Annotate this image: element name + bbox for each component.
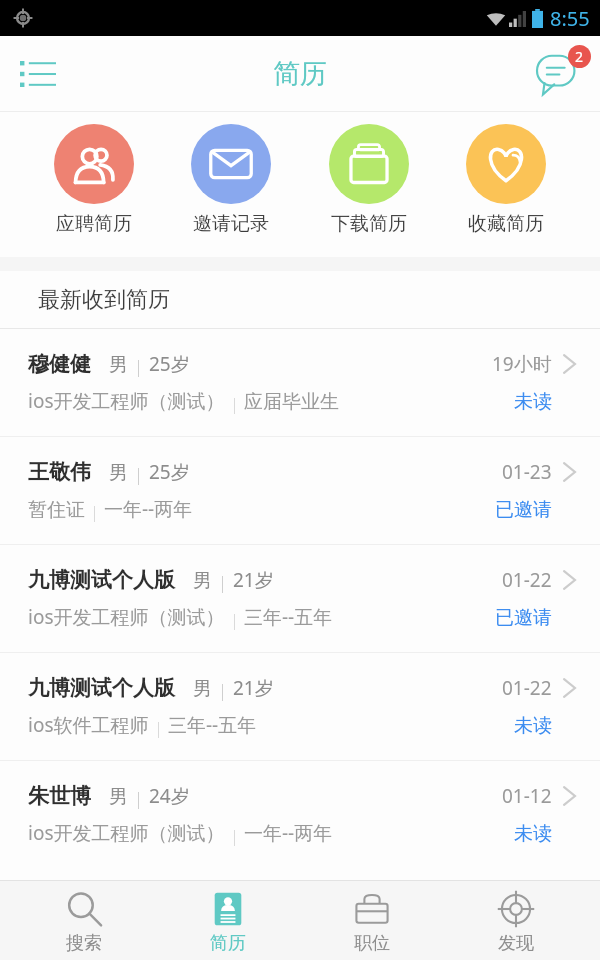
button[interactable]: 简历 <box>168 880 288 960</box>
staticText: 未读 <box>514 390 552 414</box>
button[interactable]: 王敬伟 <box>0 437 600 544</box>
staticText: 已邀请 <box>495 498 552 522</box>
staticText: 九博测试个人版 <box>28 675 175 701</box>
staticText: 男 <box>109 461 128 485</box>
button[interactable]: 九博测试个人版 <box>0 545 600 652</box>
staticText: 男 <box>109 785 128 809</box>
staticText: 未读 <box>514 822 552 846</box>
button[interactable]: Messages, 2 unread <box>530 43 592 105</box>
button[interactable]: 发现 <box>456 880 576 960</box>
staticText: 暂住证 <box>28 498 85 522</box>
staticText: 三年--五年 <box>168 712 257 738</box>
staticText: 8:55 <box>550 5 590 32</box>
button[interactable]: 搜索 <box>24 880 144 960</box>
staticText: 王敬伟 <box>28 459 91 485</box>
staticText: 已邀请 <box>495 606 552 630</box>
staticText: 男 <box>109 353 128 377</box>
button[interactable]: 职位 <box>312 880 432 960</box>
staticText: 最新收到简历 <box>38 286 170 314</box>
button[interactable]: 九博测试个人版 <box>0 653 600 760</box>
staticText: 收藏简历 <box>468 212 544 236</box>
staticText: 三年--五年 <box>244 604 333 630</box>
staticText: 男 <box>193 677 212 701</box>
staticText: 25岁 <box>149 351 190 377</box>
staticText: 应聘简历 <box>56 212 132 236</box>
staticText: 25岁 <box>149 459 190 485</box>
button[interactable]: Menu <box>8 44 68 104</box>
staticText: 01-22 <box>502 675 552 701</box>
staticText: 19小时 <box>492 351 552 377</box>
staticText: 01-22 <box>502 567 552 593</box>
staticText: 01-23 <box>502 459 552 485</box>
staticText: 男 <box>193 569 212 593</box>
staticText: 穆健健 <box>28 351 91 377</box>
staticText: 01-12 <box>502 783 552 809</box>
staticText: 24岁 <box>149 783 190 809</box>
staticText: ios开发工程师（测试） <box>28 820 225 846</box>
staticText: 搜索 <box>66 932 102 955</box>
staticText: 下载简历 <box>331 212 407 236</box>
staticText: ios开发工程师（测试） <box>28 388 225 414</box>
staticText: 2 <box>575 47 584 66</box>
staticText: 邀请记录 <box>193 212 269 236</box>
staticText: 职位 <box>354 932 390 955</box>
staticText: 21岁 <box>233 675 274 701</box>
staticText: 一年--两年 <box>244 820 333 846</box>
staticText: ios软件工程师 <box>28 712 149 738</box>
button[interactable]: 应聘简历 <box>50 124 138 236</box>
staticText: 一年--两年 <box>104 496 193 522</box>
button[interactable]: 穆健健 <box>0 329 600 436</box>
staticText: 九博测试个人版 <box>28 567 175 593</box>
staticText: 21岁 <box>233 567 274 593</box>
staticText: 应届毕业生 <box>244 390 339 414</box>
button[interactable]: 朱世博 <box>0 761 600 868</box>
staticText: ios开发工程师（测试） <box>28 604 225 630</box>
button[interactable]: 下载简历 <box>325 124 413 236</box>
staticText: 发现 <box>498 932 534 955</box>
staticText: 朱世博 <box>28 783 91 809</box>
button[interactable]: 邀请记录 <box>187 124 275 236</box>
staticText: 简历 <box>210 932 246 955</box>
staticText: 简历 <box>273 57 327 91</box>
staticText: 未读 <box>514 714 552 738</box>
button[interactable]: 收藏简历 <box>462 124 550 236</box>
